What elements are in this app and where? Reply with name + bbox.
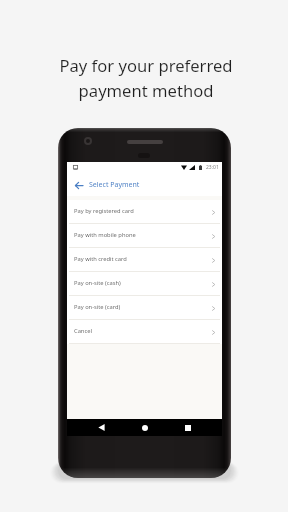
button[interactable]: Back xyxy=(67,172,222,196)
button[interactable]: Pay on-site (cash) xyxy=(67,272,222,296)
button[interactable]: Pay by registered card xyxy=(67,200,222,224)
button[interactable]: Cancel xyxy=(67,320,222,344)
staticText: Pay for your preferred payment method xyxy=(59,54,233,102)
staticText: Pay with mobile phone xyxy=(74,231,136,239)
button[interactable]: Pay with credit card xyxy=(67,248,222,272)
staticText: Cancel xyxy=(74,327,92,335)
staticText: Pay by registered card xyxy=(74,207,134,215)
button[interactable]: Recent apps xyxy=(178,419,198,436)
other: Back xyxy=(75,182,83,189)
button[interactable]: Home xyxy=(135,419,155,436)
staticText: Select Payment xyxy=(89,180,140,190)
button[interactable]: Pay with mobile phone xyxy=(67,224,222,248)
button[interactable]: Back xyxy=(91,419,111,436)
button[interactable]: Pay on-site (card) xyxy=(67,296,222,320)
staticText: 23:01 xyxy=(206,164,219,171)
staticText: Pay on-site (cash) xyxy=(74,279,121,287)
staticText: Pay with credit card xyxy=(74,255,127,263)
staticText: Pay on-site (card) xyxy=(74,303,121,311)
